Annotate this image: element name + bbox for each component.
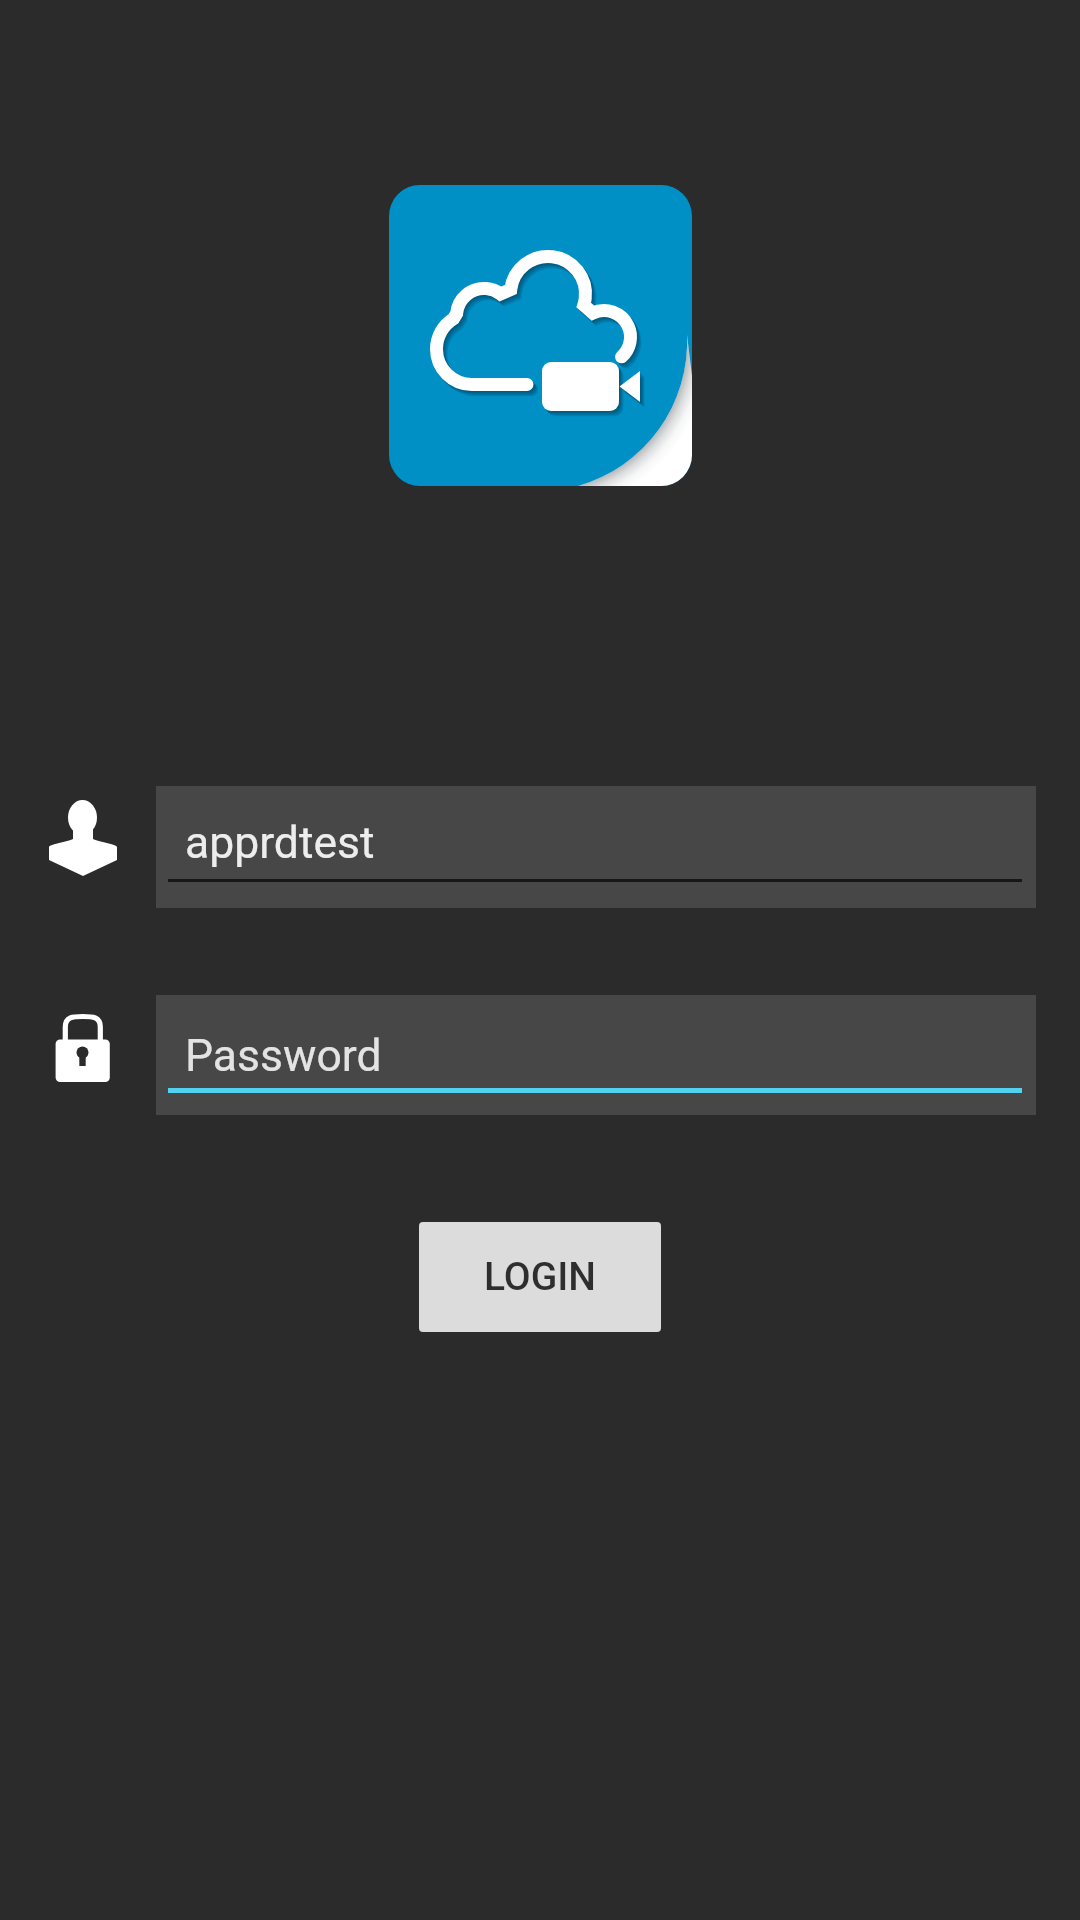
staticText: apprdtest xyxy=(185,817,375,869)
staticText: Password xyxy=(185,1030,382,1082)
other: App logo xyxy=(389,185,692,486)
button[interactable]: Password xyxy=(156,995,1036,1115)
other: Username xyxy=(44,795,122,882)
button[interactable]: apprdtest xyxy=(156,786,1036,908)
other: Password xyxy=(52,1010,116,1088)
button[interactable]: LOGIN xyxy=(419,1222,661,1332)
staticText: LOGIN xyxy=(484,1254,596,1300)
